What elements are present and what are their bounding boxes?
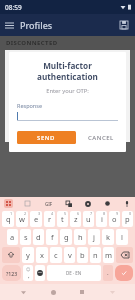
button[interactable]: GIF <box>43 198 54 209</box>
button[interactable]: Hide keyboard <box>105 285 119 299</box>
staticText: 6 <box>77 211 80 216</box>
staticText: 2 <box>24 211 27 216</box>
staticText: e <box>34 214 39 224</box>
button[interactable]: a <box>7 229 18 245</box>
button[interactable]: Recent apps <box>75 285 89 299</box>
button[interactable]: Shift <box>2 247 20 263</box>
button[interactable]: Settings <box>83 199 92 208</box>
button[interactable]: y <box>22 247 34 263</box>
staticText: 4 <box>51 211 54 216</box>
staticText: k <box>106 232 111 242</box>
button[interactable]: h <box>74 229 86 245</box>
staticText: w <box>19 214 25 224</box>
button[interactable]: Comma <box>23 265 33 281</box>
button[interactable]: Keyboard settings <box>4 199 13 208</box>
staticText: b <box>80 250 85 260</box>
button[interactable]: s <box>20 229 31 245</box>
staticText: c <box>54 250 58 260</box>
button[interactable]: g <box>60 229 72 245</box>
button[interactable]: Open navigation menu <box>0 16 18 34</box>
staticText: l <box>121 232 123 242</box>
button[interactable]: j <box>88 229 100 245</box>
staticText: Multi-factor authentication <box>17 60 118 82</box>
staticText: SEND <box>37 134 56 142</box>
button[interactable]: Themes <box>103 199 112 208</box>
staticText: p <box>125 214 130 224</box>
staticText: 7 <box>90 211 93 216</box>
staticText: . <box>107 269 109 277</box>
staticText: v <box>68 250 72 260</box>
staticText: h <box>78 232 83 242</box>
button[interactable]: i <box>96 211 107 227</box>
button[interactable]: DE · EN <box>47 265 101 281</box>
staticText: 9 <box>116 211 119 216</box>
staticText: t <box>61 214 64 224</box>
button[interactable]: r <box>44 211 55 227</box>
staticText: m <box>105 250 113 260</box>
staticText: 8 <box>103 211 106 216</box>
button[interactable]: n <box>90 247 101 263</box>
button[interactable]: SEND <box>17 131 76 144</box>
button[interactable]: o <box>109 211 120 227</box>
staticText: q <box>6 214 11 224</box>
staticText: y <box>26 250 30 260</box>
button[interactable]: w <box>16 211 28 227</box>
staticText: ?123 <box>6 270 18 277</box>
button[interactable]: Home <box>46 285 60 299</box>
staticText: 5 <box>64 211 67 216</box>
staticText: a <box>10 232 15 242</box>
staticText: n <box>93 250 98 260</box>
button[interactable]: Emoji <box>35 265 45 281</box>
button[interactable]: k <box>102 229 114 245</box>
staticText: u <box>86 214 91 224</box>
button[interactable]: b <box>77 247 88 263</box>
staticText: 08:59 <box>5 3 22 12</box>
button[interactable]: CANCEL <box>84 131 118 144</box>
staticText: d <box>36 232 41 242</box>
staticText: Response <box>17 102 43 109</box>
button[interactable]: d <box>33 229 44 245</box>
button[interactable]: e <box>30 211 42 227</box>
button[interactable]: Save profile <box>115 16 133 34</box>
button[interactable]: Voice input <box>122 199 131 208</box>
staticText: DE · EN <box>66 270 82 276</box>
button[interactable]: l <box>116 229 128 245</box>
staticText: i <box>101 214 103 224</box>
button[interactable]: Period <box>103 265 113 281</box>
button[interactable]: t <box>57 211 68 227</box>
button[interactable]: Back <box>16 285 30 299</box>
staticText: o <box>112 214 117 224</box>
staticText: j <box>93 232 95 242</box>
staticText: 3 <box>38 211 41 216</box>
staticText: s <box>24 232 28 242</box>
button[interactable]: p <box>122 211 133 227</box>
staticText: g <box>64 232 69 242</box>
button[interactable]: Backspace <box>116 247 133 263</box>
button[interactable]: x <box>36 247 48 263</box>
staticText: r <box>48 214 52 224</box>
button[interactable]: ?123 <box>2 265 21 281</box>
staticText: x <box>40 250 44 260</box>
staticText: GIF <box>45 201 53 207</box>
staticText: ☺ <box>26 267 31 272</box>
button[interactable]: q <box>2 211 14 227</box>
staticText: z <box>74 214 78 224</box>
staticText: DISCONNECTED <box>6 39 58 47</box>
button[interactable]: m <box>103 247 114 263</box>
button[interactable]: u <box>83 211 94 227</box>
staticText: 1 <box>10 211 13 216</box>
button[interactable]: v <box>64 247 75 263</box>
button[interactable]: Enter <box>115 265 133 281</box>
staticText: Enter your OTP: <box>17 87 118 95</box>
button[interactable]: c <box>50 247 62 263</box>
staticText: f <box>51 232 54 242</box>
button[interactable]: z <box>70 211 81 227</box>
button[interactable]: f <box>46 229 58 245</box>
staticText: Profiles <box>20 19 53 31</box>
button[interactable]: Translate <box>64 199 73 208</box>
button[interactable]: Stickers <box>23 199 32 208</box>
staticText: 0 <box>129 211 132 216</box>
staticText: CANCEL <box>88 134 114 142</box>
staticText: , <box>28 272 30 280</box>
